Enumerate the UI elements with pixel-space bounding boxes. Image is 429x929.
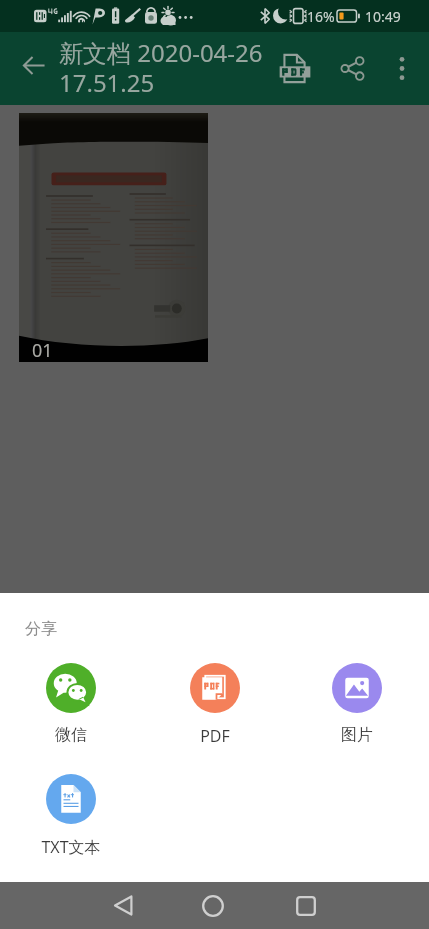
button[interactable]: 01 bbox=[19, 113, 208, 362]
staticText: 微信 bbox=[55, 725, 87, 745]
button[interactable]: Export PDF bbox=[271, 41, 318, 96]
button[interactable]: 图片 bbox=[310, 663, 404, 745]
button[interactable]: Home bbox=[184, 882, 241, 929]
button[interactable]: 微信 bbox=[24, 663, 118, 745]
staticText: 新文档 2020-04-26 17.51.25 bbox=[59, 36, 277, 99]
staticText: 10:49 bbox=[365, 7, 401, 26]
staticText: 16% bbox=[307, 7, 335, 26]
staticText: TXT文本 bbox=[41, 836, 101, 858]
button[interactable]: More options bbox=[381, 41, 423, 96]
button[interactable]: Back bbox=[94, 882, 151, 929]
staticText: PDF bbox=[200, 725, 230, 747]
staticText: 分享 bbox=[25, 619, 57, 639]
button[interactable]: TXT文本 bbox=[24, 774, 118, 858]
button[interactable]: Back bbox=[5, 37, 62, 94]
button[interactable]: PDF bbox=[168, 663, 262, 747]
staticText: 01 bbox=[32, 338, 53, 363]
button[interactable]: Recents bbox=[277, 882, 334, 929]
button[interactable]: Share bbox=[330, 41, 376, 96]
staticText: 图片 bbox=[341, 725, 373, 745]
